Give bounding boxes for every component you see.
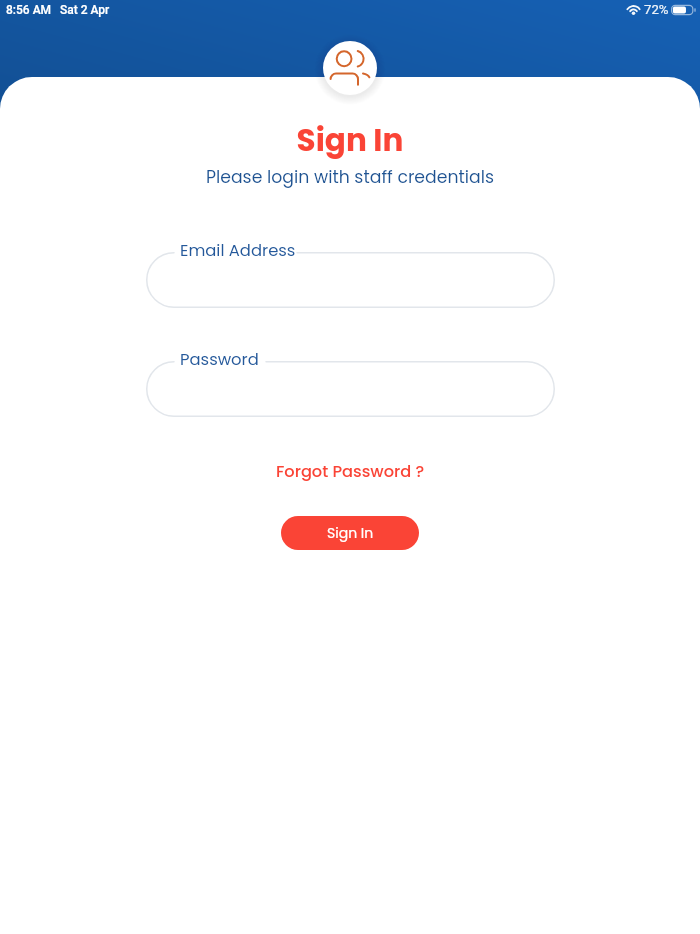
button[interactable]: Forgot Password ? (268, 456, 433, 487)
staticText: 72% (644, 2, 669, 17)
staticText: Please login with staff credentials (0, 165, 700, 189)
button[interactable]: Account (323, 41, 377, 95)
button[interactable] (146, 361, 555, 417)
staticText: Forgot Password ? (276, 460, 425, 483)
staticText: Sat 2 Apr (60, 3, 110, 17)
staticText: 8:56 AM (6, 3, 52, 17)
staticText: Sign In (0, 118, 700, 161)
staticText: Password (180, 348, 259, 371)
staticText: Sign In (327, 523, 374, 543)
staticText: Email Address (180, 239, 296, 262)
button[interactable] (146, 252, 555, 308)
button[interactable]: Sign In (281, 516, 419, 550)
